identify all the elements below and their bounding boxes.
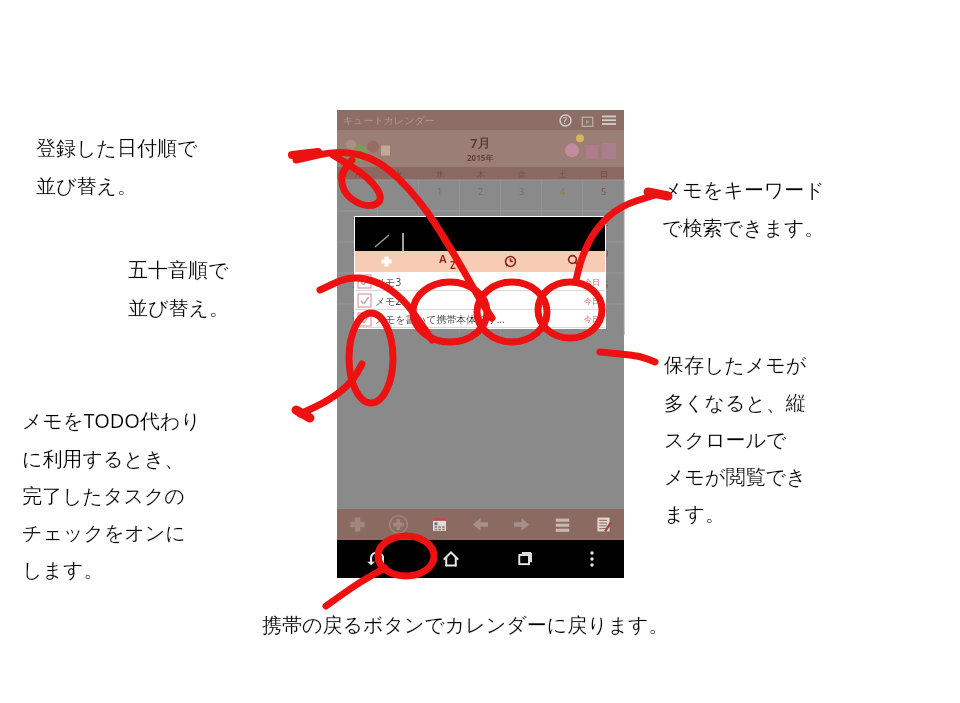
staticText: メモ2: [375, 294, 584, 308]
staticText: 金: [518, 169, 526, 179]
staticText: メモを書いて携帯本体のリ…: [375, 312, 584, 326]
button[interactable]: [337, 180, 378, 211]
button[interactable]: Toggle done: [355, 291, 605, 310]
button[interactable]: More options: [571, 540, 613, 578]
staticText: 5: [601, 185, 607, 197]
button[interactable]: Edit memo: [583, 509, 624, 540]
button[interactable]: Search memos: [542, 251, 605, 272]
button[interactable]: 26: [583, 273, 624, 304]
staticText: 13: [352, 247, 363, 259]
button[interactable]: 31: [501, 304, 542, 335]
staticText: 水: [436, 169, 444, 179]
button[interactable]: List view: [542, 509, 583, 540]
button[interactable]: Calendar: [419, 509, 460, 540]
staticText: 登録した日付順で 並び替え。: [36, 136, 198, 199]
staticText: 23: [475, 278, 486, 290]
button[interactable]: Toggle done: [358, 275, 371, 288]
staticText: 16: [475, 247, 486, 259]
staticText: 17: [516, 247, 527, 259]
button[interactable]: Sort by date: [479, 251, 542, 272]
button[interactable]: [542, 304, 583, 335]
staticText: 月: [354, 169, 362, 179]
button[interactable]: Add event: [378, 509, 419, 540]
staticText: 土: [559, 169, 567, 179]
button[interactable]: 23: [460, 273, 501, 304]
button[interactable]: Next month: [501, 509, 542, 540]
button[interactable]: Previous month: [460, 509, 501, 540]
button[interactable]: 1: [419, 180, 460, 211]
staticText: 20: [352, 278, 363, 290]
button[interactable]: Recent apps: [504, 540, 546, 578]
staticText: 25: [557, 278, 568, 290]
staticText: Z: [450, 258, 456, 272]
staticText: 今日: [584, 314, 600, 324]
button[interactable]: [355, 217, 605, 251]
button[interactable]: 9: [460, 211, 501, 242]
button[interactable]: 21: [378, 273, 419, 304]
staticText: 2: [478, 185, 484, 197]
button[interactable]: 29: [419, 304, 460, 335]
button[interactable]: 17: [501, 242, 542, 273]
button[interactable]: [583, 304, 624, 335]
staticText: メモをTODO代わり に利用するとき、 完了したタスクの チェックをオンに しま…: [22, 407, 201, 583]
staticText: 9: [478, 216, 484, 228]
staticText: 2015年: [467, 152, 494, 163]
staticText: ?: [563, 114, 567, 126]
button[interactable]: 8: [419, 211, 460, 242]
button[interactable]: Play store: [578, 111, 596, 129]
staticText: 24: [516, 278, 527, 290]
button[interactable]: Home: [430, 540, 472, 578]
button[interactable]: 2: [460, 180, 501, 211]
button[interactable]: 30: [460, 304, 501, 335]
staticText: 今日: [584, 277, 600, 287]
button[interactable]: 12: [583, 211, 624, 242]
button[interactable]: Back: [356, 540, 398, 578]
staticText: 今日: [584, 296, 600, 306]
button[interactable]: 18: [542, 242, 583, 273]
button[interactable]: Toggle done: [355, 310, 605, 328]
staticText: 19: [598, 247, 609, 259]
button[interactable]: 7: [378, 211, 419, 242]
button[interactable]: Add memo: [355, 251, 417, 272]
staticText: 木: [477, 169, 485, 179]
button[interactable]: 15: [419, 242, 460, 273]
button[interactable]: 16: [460, 242, 501, 273]
staticText: 火: [395, 169, 403, 179]
button[interactable]: 22: [419, 273, 460, 304]
button[interactable]: 13: [337, 242, 378, 273]
button[interactable]: 10: [501, 211, 542, 242]
button[interactable]: Toggle done: [358, 313, 371, 326]
button[interactable]: Toggle done: [355, 272, 605, 291]
button[interactable]: [378, 180, 419, 211]
button[interactable]: Sort alphabetically: [417, 251, 479, 272]
staticText: 7: [396, 216, 402, 228]
button[interactable]: 25: [542, 273, 583, 304]
button[interactable]: Toggle done: [358, 294, 371, 307]
staticText: 15: [434, 247, 445, 259]
button[interactable]: Help: [556, 111, 574, 129]
staticText: 27: [352, 309, 363, 321]
button[interactable]: 3: [501, 180, 542, 211]
button[interactable]: 28: [378, 304, 419, 335]
staticText: 21: [393, 278, 404, 290]
staticText: 18: [557, 247, 568, 259]
staticText: 30: [475, 309, 486, 321]
staticText: 五十音順で 並び替え。: [128, 258, 229, 321]
staticText: 携帯の戻るボタンでカレンダーに戻ります。: [262, 613, 669, 638]
button[interactable]: 4: [542, 180, 583, 211]
staticText: A: [439, 251, 447, 266]
staticText: 14: [393, 247, 404, 259]
staticText: 日: [600, 169, 608, 179]
staticText: 8: [437, 216, 443, 228]
button[interactable]: 5: [583, 180, 624, 211]
button[interactable]: Add: [337, 509, 378, 540]
button[interactable]: 24: [501, 273, 542, 304]
button[interactable]: 6: [337, 211, 378, 242]
button[interactable]: 20: [337, 273, 378, 304]
button[interactable]: Menu: [600, 111, 618, 129]
button[interactable]: 14: [378, 242, 419, 273]
button[interactable]: 27: [337, 304, 378, 335]
button[interactable]: 11: [542, 211, 583, 242]
staticText: 4: [560, 185, 566, 197]
button[interactable]: 19: [583, 242, 624, 273]
